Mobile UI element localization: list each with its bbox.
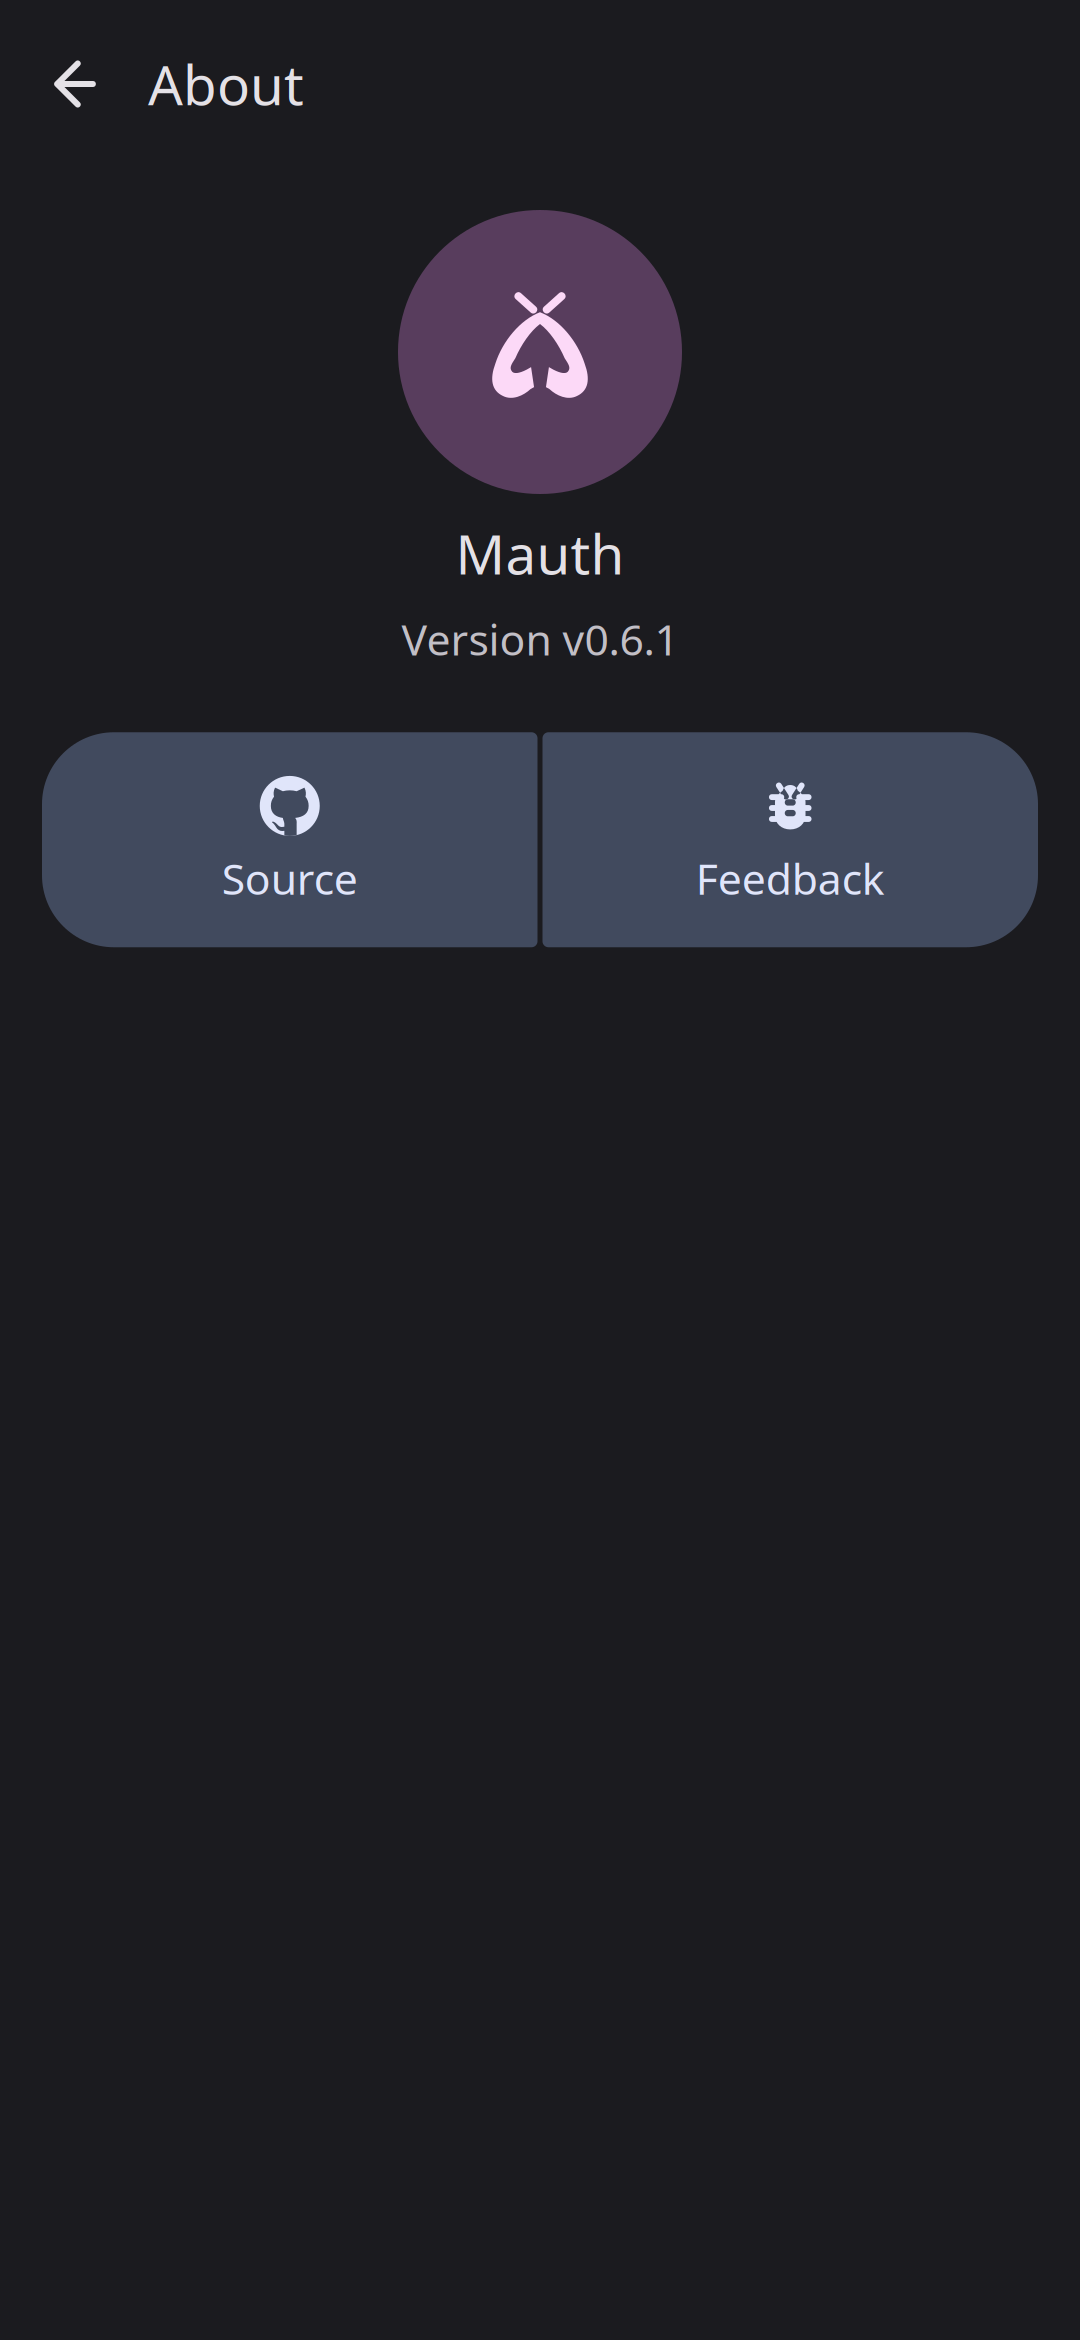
- staticText: Feedback: [696, 850, 885, 907]
- button[interactable]: Source: [42, 732, 537, 947]
- button[interactable]: Back: [12, 0, 138, 168]
- staticText: Version v0.6.1: [401, 611, 678, 667]
- staticText: About: [148, 48, 304, 120]
- staticText: Source: [222, 850, 358, 907]
- button[interactable]: Feedback: [542, 732, 1038, 947]
- staticText: Mauth: [455, 517, 624, 590]
